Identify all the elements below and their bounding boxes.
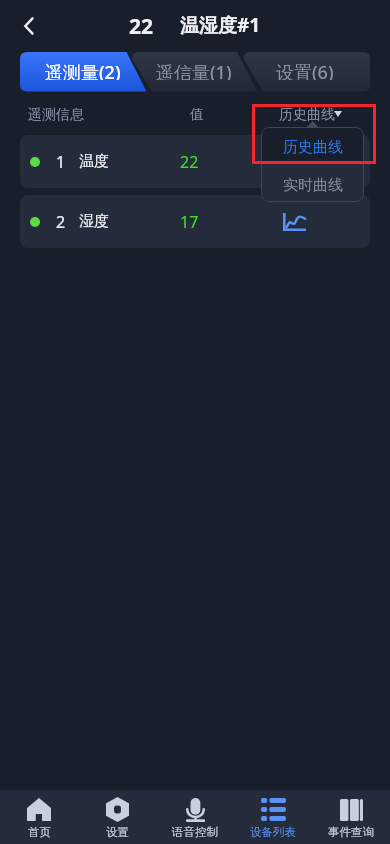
staticText: 温度 [79,152,109,171]
button[interactable]: 历史曲线 [275,102,347,126]
staticText: 1 [56,151,66,173]
button[interactable]: Back [14,11,44,41]
staticText: 语音控制 [172,825,218,839]
staticText: 遥信量(1) [156,60,232,80]
button[interactable]: 遥测量(2) [45,60,121,80]
button[interactable]: 设置 [78,790,156,844]
staticText: 首页 [28,825,51,839]
button[interactable]: 设置(6) [276,60,334,80]
staticText: 事件查询 [328,825,374,839]
button[interactable]: 设备列表 [234,790,312,844]
staticText: 遥测量(2) [45,60,121,80]
button[interactable]: 实时曲线 [261,164,364,202]
staticText: 值 [190,106,204,124]
staticText: 遥测信息 [28,106,84,124]
staticText: 设置 [106,825,129,839]
staticText: 22 [180,151,199,173]
staticText: 实时曲线 [283,176,343,195]
button[interactable]: 事件查询 [312,790,390,844]
button[interactable]: 遥信量(1) [156,60,232,80]
staticText: 22 [129,12,154,41]
staticText: 设备列表 [250,825,296,839]
staticText: 设置(6) [276,60,334,80]
button[interactable]: 历史曲线 [261,127,364,164]
button[interactable]: 首页 [0,790,78,844]
button[interactable]: 语音控制 [156,790,234,844]
button[interactable]: 2 [20,195,370,248]
staticText: 2 [56,211,66,233]
staticText: 历史曲线 [283,138,343,157]
staticText: 温湿度#1 [180,12,261,38]
button[interactable]: 历史曲线 [278,205,310,239]
staticText: 17 [180,211,199,233]
staticText: 湿度 [79,212,109,231]
button[interactable]: 1 [20,135,370,188]
staticText: 历史曲线 [279,106,335,124]
